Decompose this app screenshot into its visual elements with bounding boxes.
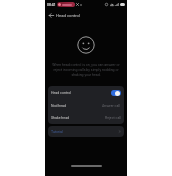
staticText: Answer call: [102, 104, 121, 108]
staticText: Shake head: [51, 116, 70, 120]
button[interactable]: Shake head: [48, 112, 124, 124]
staticText: Nod head: [51, 104, 66, 108]
staticText: Tutorial: [51, 130, 63, 134]
button[interactable]: Toggle head control: [111, 90, 121, 96]
staticText: Reject call: [105, 116, 121, 120]
button[interactable]: Nod head: [48, 100, 124, 112]
staticText: 08:41: [47, 3, 56, 7]
staticText: When head control is on, you can answer …: [49, 63, 123, 77]
staticText: Head control: [56, 13, 80, 18]
button[interactable]: Tutorial: [48, 126, 124, 137]
button[interactable]: Back: [47, 11, 56, 20]
staticText: Head control: [51, 91, 72, 95]
button[interactable]: Head control: [48, 86, 124, 100]
